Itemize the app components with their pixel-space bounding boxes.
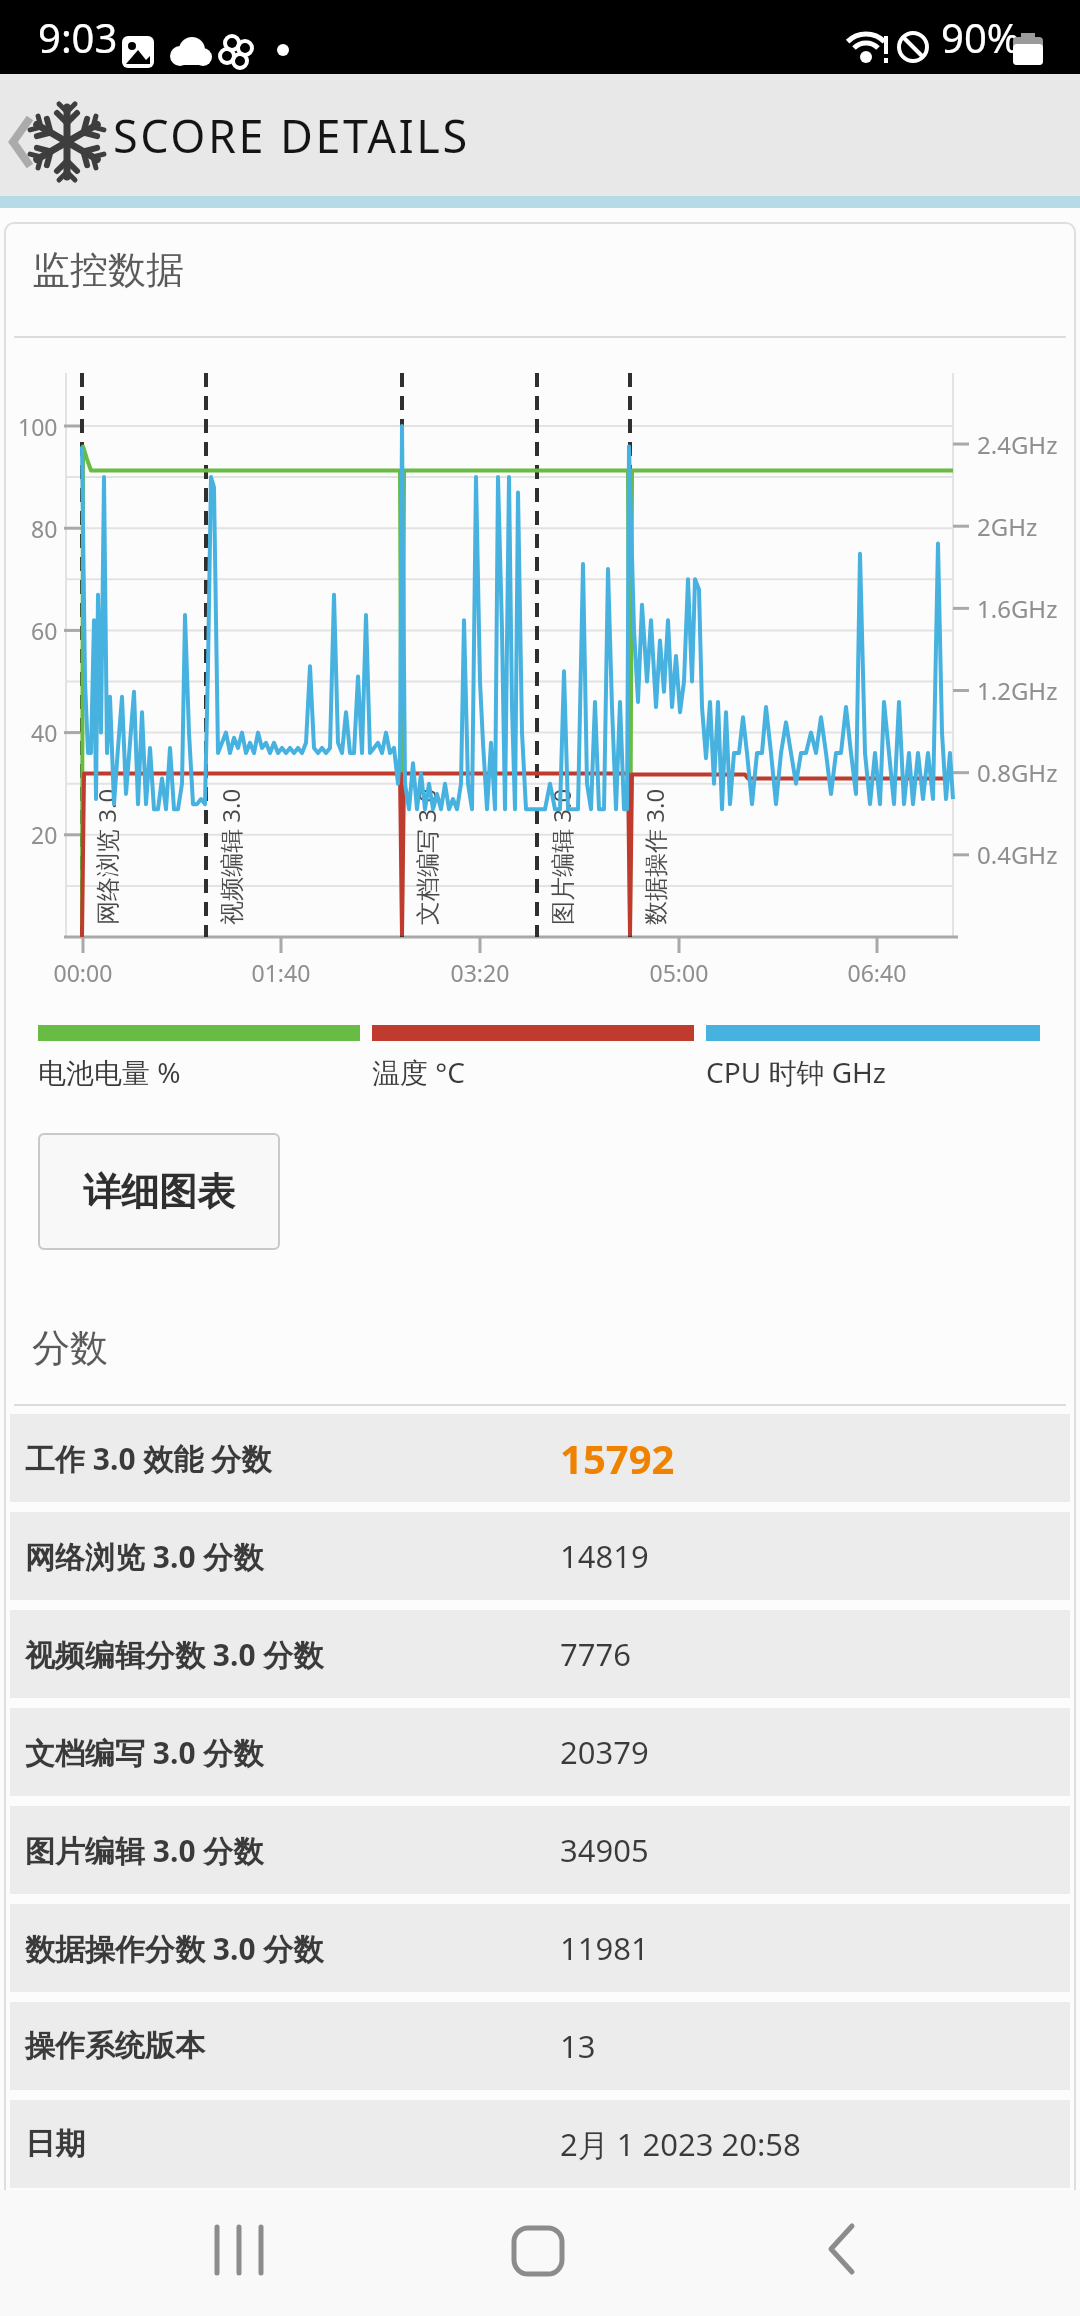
staticText: 文档编写 3.0 分数	[25, 1732, 264, 1773]
button[interactable]	[0, 74, 110, 196]
button[interactable]: 网络浏览 3.0 分数	[10, 1512, 1070, 1600]
button[interactable]	[160, 2190, 320, 2316]
staticText: 工作 3.0 效能 分数	[25, 1438, 272, 1479]
staticText: 13	[560, 2025, 596, 2067]
staticText: 日期	[25, 2125, 85, 2163]
staticText: CPU 时钟 GHz	[706, 1053, 886, 1091]
staticText: 视频编辑分数 3.0 分数	[25, 1634, 324, 1675]
staticText: 7776	[560, 1633, 631, 1675]
staticText: 详细图表	[83, 1168, 235, 1216]
staticText: 2月 1 2023 20:58	[560, 2123, 801, 2165]
button[interactable]	[460, 2190, 620, 2316]
button[interactable]	[760, 2190, 920, 2316]
staticText: SCORE DETAILS	[113, 105, 470, 166]
staticText: 15792	[560, 1431, 675, 1485]
staticText: 11981	[560, 1927, 649, 1969]
button[interactable]: 工作 3.0 效能 分数	[10, 1414, 1070, 1502]
staticText: 图片编辑 3.0 分数	[25, 1830, 264, 1871]
button[interactable]: 日期	[10, 2100, 1070, 2188]
staticText: 温度 °C	[372, 1053, 465, 1091]
button[interactable]: 文档编写 3.0 分数	[10, 1708, 1070, 1796]
staticText: 20379	[560, 1731, 649, 1773]
button[interactable]: 数据操作分数 3.0 分数	[10, 1904, 1070, 1992]
staticText: 数据操作分数 3.0 分数	[25, 1928, 324, 1969]
button[interactable]: 视频编辑分数 3.0 分数	[10, 1610, 1070, 1698]
staticText: 分数	[32, 1324, 108, 1372]
button[interactable]: 详细图表	[38, 1133, 280, 1250]
staticText: 监控数据	[32, 246, 184, 294]
staticText: 9:03	[38, 10, 118, 64]
staticText: 网络浏览 3.0 分数	[25, 1536, 264, 1577]
staticText: 14819	[560, 1535, 649, 1577]
button[interactable]: 图片编辑 3.0 分数	[10, 1806, 1070, 1894]
staticText: 操作系统版本	[25, 2027, 205, 2065]
button[interactable]: 操作系统版本	[10, 2002, 1070, 2090]
staticText: 电池电量 %	[38, 1053, 181, 1091]
staticText: 34905	[560, 1829, 649, 1871]
staticText: 90%	[941, 10, 1020, 64]
